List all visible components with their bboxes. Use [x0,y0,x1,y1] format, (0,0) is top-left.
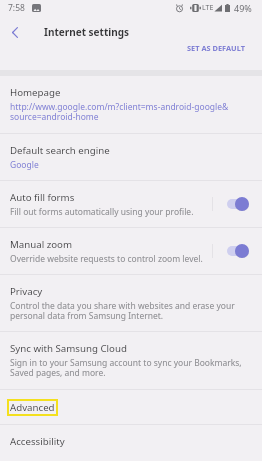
staticText: Accessibility [10,435,65,448]
staticText: Control the data you share with websites… [10,300,235,321]
staticText: Advanced [10,401,55,414]
staticText: Fill out forms automatically using your … [10,206,194,218]
staticText: Google [10,159,39,171]
staticText: LTE [202,3,214,13]
staticText: Privacy [10,285,43,298]
button[interactable]: Navigate up [0,22,30,44]
staticText: Auto fill forms [10,191,75,204]
staticText: SET AS DEFAULT [187,43,245,53]
staticText: Manual zoom [10,238,72,251]
button[interactable]: Advanced [0,390,262,424]
button[interactable]: SET AS DEFAULT [187,44,245,54]
staticText: Homepage [10,86,61,99]
button[interactable]: Privacy [0,275,262,331]
button[interactable]: Manual zoom [0,228,262,274]
button[interactable]: Default search engine [0,134,262,180]
staticText: Default search engine [10,144,110,157]
button[interactable]: Accessibility [0,425,262,461]
staticText: http://www.google.com/m?client=ms-androi… [10,101,229,122]
button[interactable]: Sync with Samsung Cloud [0,332,262,389]
staticText: Sync with Samsung Cloud [10,342,127,355]
staticText: Sign in to your Samsung account to sync … [10,357,242,378]
staticText: Override website requests to control zoo… [10,253,203,265]
staticText: Internet settings [44,25,130,39]
button[interactable]: Auto fill forms [0,181,262,227]
staticText: 49% [234,2,252,14]
staticText: 7:58 [8,2,25,14]
button[interactable]: Homepage [0,76,262,133]
